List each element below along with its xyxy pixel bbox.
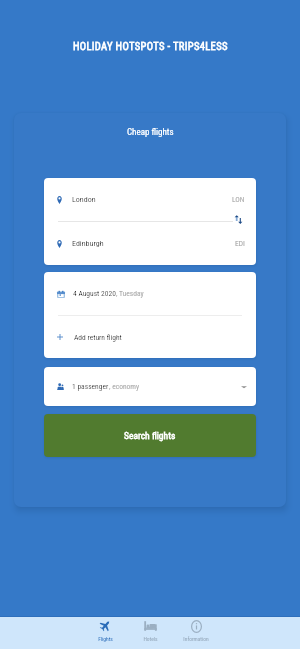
- button[interactable]: London: [44, 178, 256, 221]
- staticText: Cheap flights: [127, 127, 174, 138]
- staticText: Hotels: [143, 636, 158, 642]
- button[interactable]: Flights: [83, 617, 127, 649]
- button[interactable]: Edinburgh: [44, 222, 256, 265]
- staticText: 4 August 2020: [73, 289, 116, 298]
- staticText: 1 passenger: [72, 382, 109, 391]
- button[interactable]: 1 passenger: [44, 367, 256, 406]
- staticText: LON: [232, 195, 245, 204]
- staticText: London: [72, 195, 96, 204]
- staticText: EDI: [235, 239, 245, 248]
- staticText: Information: [183, 636, 209, 642]
- staticText: HOLIDAY HOTSPOTS - TRIPS4LESS: [73, 40, 228, 52]
- button[interactable]: 4 August 2020: [44, 272, 256, 315]
- staticText: Flights: [98, 636, 113, 642]
- button[interactable]: Hotels: [128, 617, 172, 649]
- staticText: Search flights: [124, 430, 176, 441]
- button[interactable]: Information: [174, 617, 218, 649]
- staticText: Edinburgh: [72, 239, 104, 248]
- button[interactable]: Swap origin and destination: [227, 208, 249, 230]
- button[interactable]: Search flights: [44, 414, 256, 457]
- staticText: Add return flight: [74, 333, 122, 342]
- staticText: , economy: [109, 382, 140, 391]
- button[interactable]: Add return flight: [44, 316, 256, 358]
- staticText: , Tuesday: [116, 289, 144, 298]
